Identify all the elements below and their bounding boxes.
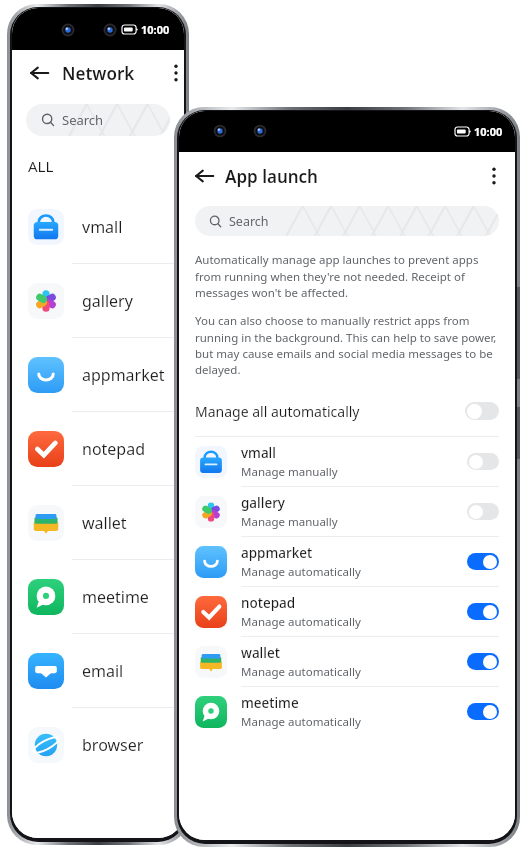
staticText: 10:00 [141, 22, 170, 37]
button[interactable]: appmarket [179, 537, 515, 586]
button[interactable]: Back [22, 56, 56, 90]
button[interactable]: meetime [12, 560, 184, 633]
staticText: gallery [241, 494, 285, 512]
staticText: You can also choose to manually restrict… [195, 313, 499, 377]
staticText: Search [62, 111, 104, 129]
button[interactable]: Off [465, 402, 499, 420]
staticText: Network access [62, 62, 176, 85]
staticText: appmarket [241, 544, 313, 562]
button[interactable]: notepad [12, 412, 184, 485]
staticText: Search [229, 213, 269, 230]
button[interactable]: On [467, 603, 499, 620]
button[interactable]: Back [187, 159, 221, 193]
button[interactable]: notepad [179, 587, 515, 636]
button[interactable]: gallery [12, 264, 184, 337]
button[interactable]: gallery [179, 487, 515, 536]
staticText: notepad [241, 594, 296, 612]
button[interactable]: Manage all automatically [179, 395, 515, 427]
button[interactable]: On [467, 703, 499, 720]
button[interactable]: Off [467, 453, 499, 470]
staticText: browser [82, 734, 144, 756]
staticText: vmall [82, 216, 123, 238]
staticText: Manage automatically [241, 664, 361, 680]
staticText: wallet [82, 512, 127, 534]
button[interactable]: wallet [12, 486, 184, 559]
button[interactable]: On [467, 553, 499, 570]
button[interactable]: browser [12, 708, 184, 781]
staticText: Manage automatically [241, 614, 361, 630]
staticText: 10:00 [474, 124, 503, 139]
staticText: Manage all automatically [195, 402, 360, 421]
staticText: meetime [82, 586, 149, 608]
button[interactable]: appmarket [12, 338, 184, 411]
button[interactable]: vmall [12, 190, 184, 263]
staticText: Manage manually [241, 514, 338, 530]
staticText: gallery [82, 290, 133, 312]
button[interactable]: wallet [179, 637, 515, 686]
button[interactable]: Search [195, 206, 499, 236]
button[interactable]: email [12, 634, 184, 707]
button[interactable]: vmall [179, 437, 515, 486]
button[interactable]: Search [26, 104, 170, 136]
staticText: wallet [241, 644, 280, 662]
staticText: appmarket [82, 364, 165, 386]
staticText: Manage manually [241, 464, 338, 480]
staticText: notepad [82, 438, 146, 460]
staticText: ALL [28, 156, 54, 176]
staticText: Manage automatically [241, 714, 361, 730]
button[interactable]: Off [467, 503, 499, 520]
button[interactable]: More options [479, 161, 509, 191]
button[interactable]: meetime [179, 687, 515, 736]
staticText: meetime [241, 694, 299, 712]
staticText: email [82, 660, 124, 682]
button[interactable]: On [467, 653, 499, 670]
staticText: Automatically manage app launches to pre… [195, 252, 499, 300]
staticText: App launch [225, 165, 318, 188]
staticText: vmall [241, 444, 276, 462]
staticText: Manage automatically [241, 564, 361, 580]
